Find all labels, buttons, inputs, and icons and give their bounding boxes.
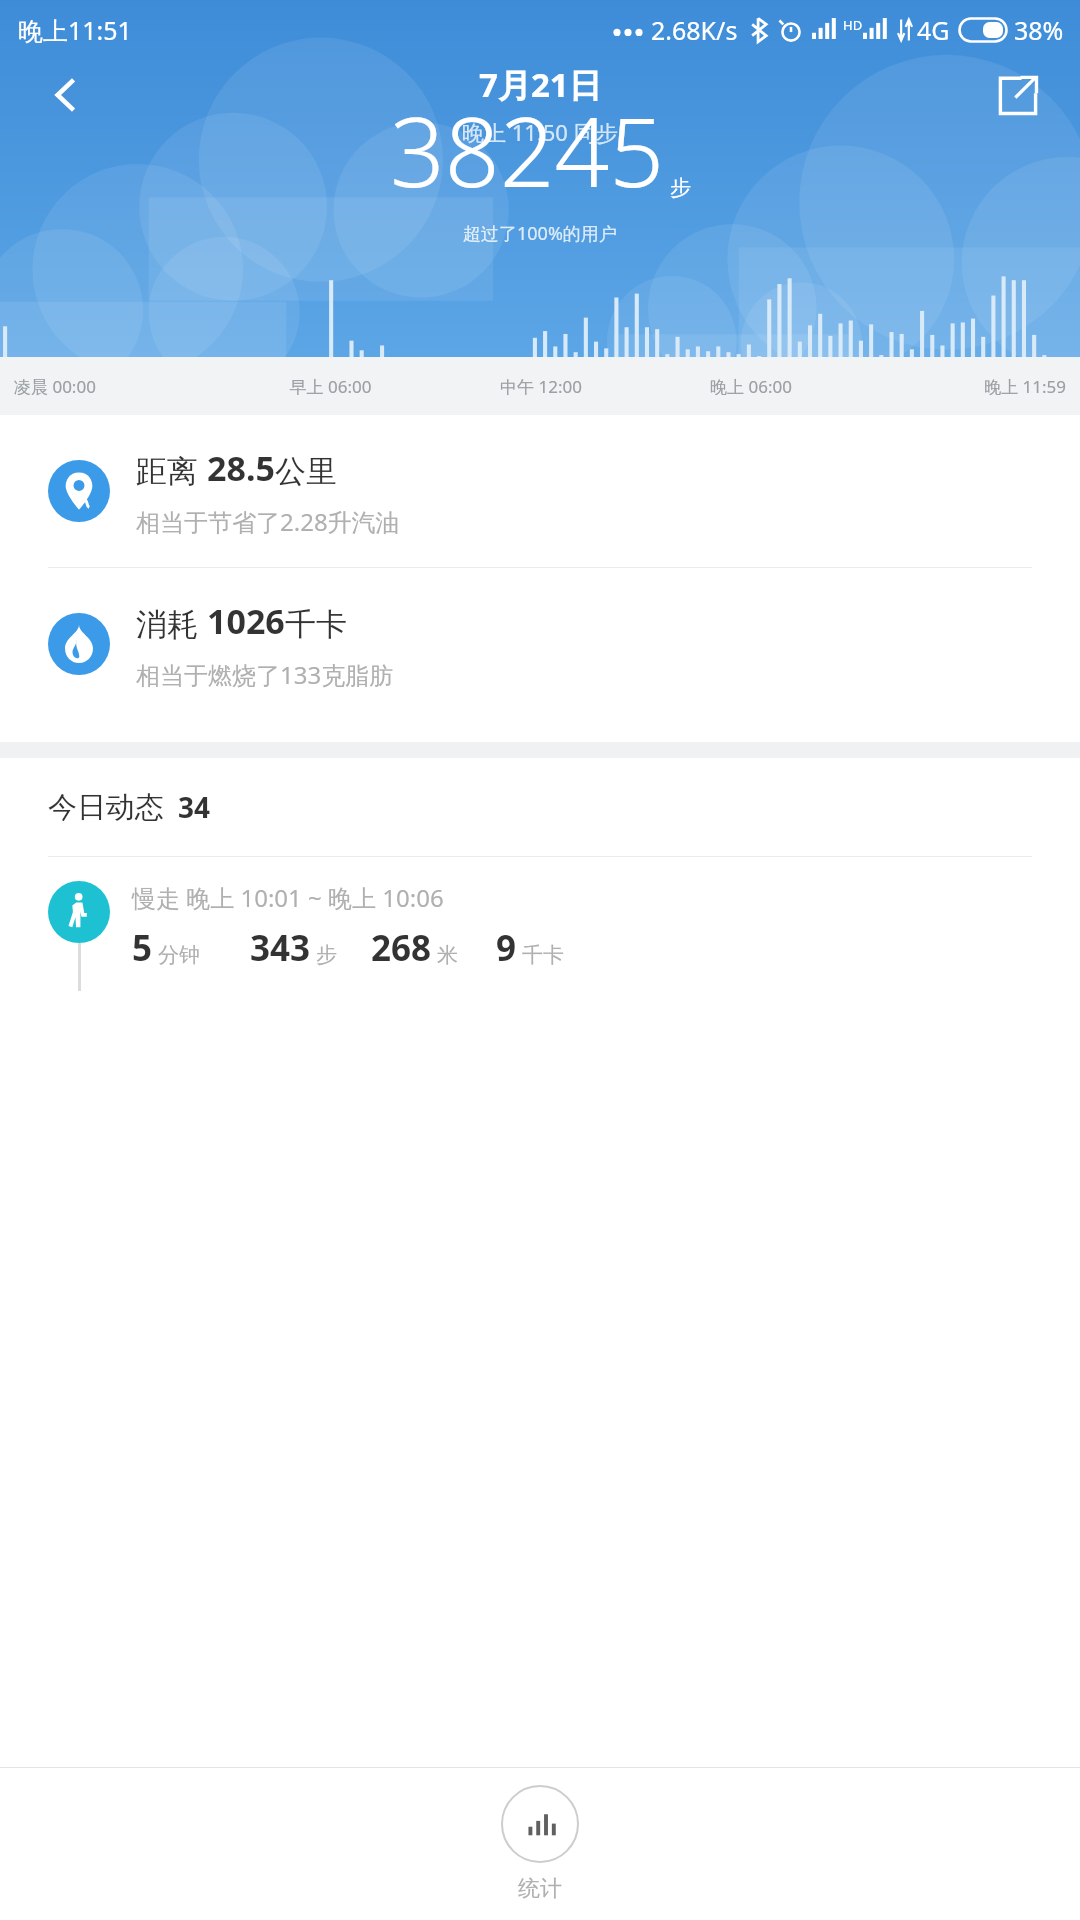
staticText: 步 <box>670 175 691 201</box>
staticText: HD <box>843 16 863 34</box>
staticText: 7月21日 <box>479 62 602 107</box>
staticText: 268 <box>371 924 432 972</box>
staticText: 晚上 11:50 同步 <box>462 117 618 147</box>
staticText: 2.68K/s <box>651 13 738 47</box>
staticText: 1026 <box>207 598 285 644</box>
staticText: 晚上11:51 <box>18 13 132 47</box>
staticText: 消耗 <box>136 602 207 644</box>
staticText: 统计 <box>518 1875 562 1903</box>
staticText: 38% <box>1014 13 1064 47</box>
staticText: 34 <box>178 788 211 826</box>
staticText: 超过了100%的用户 <box>463 221 617 246</box>
staticText: 步 <box>316 942 337 968</box>
button[interactable]: 分享 <box>980 57 1056 133</box>
button[interactable]: 慢走 晚上 10:01 ~ 晚上 10:06 <box>0 857 1080 991</box>
staticText: 凌晨 00:00 <box>14 375 225 398</box>
staticText: 28.5 <box>207 445 275 491</box>
staticText: 晚上 11:59 <box>856 375 1066 398</box>
button[interactable]: 消耗 <box>0 568 1080 720</box>
staticText: 公里 <box>275 452 337 491</box>
staticText: 中午 12:00 <box>436 375 646 398</box>
button[interactable]: 返回 <box>28 57 104 133</box>
staticText: 343 <box>250 924 311 972</box>
staticText: 距离 <box>136 449 207 491</box>
staticText: 5 <box>132 924 153 972</box>
staticText: 千卡 <box>522 942 564 968</box>
staticText: 分钟 <box>158 942 200 968</box>
staticText: 4G <box>917 13 950 47</box>
staticText: 9 <box>496 924 517 972</box>
staticText: 早上 06:00 <box>225 375 436 398</box>
button[interactable]: 距离 <box>0 415 1080 567</box>
staticText: 慢走 晚上 10:01 ~ 晚上 10:06 <box>132 881 444 914</box>
staticText: 米 <box>437 942 458 968</box>
staticText: 晚上 06:00 <box>646 375 856 398</box>
staticText: 相当于节省了2.28升汽油 <box>136 505 400 538</box>
staticText: 38245 <box>390 84 665 215</box>
staticText: 千卡 <box>285 605 347 644</box>
button[interactable]: 统计 <box>457 1779 623 1909</box>
staticText: 相当于燃烧了133克脂肪 <box>136 658 394 691</box>
staticText: 今日动态 <box>48 789 164 826</box>
